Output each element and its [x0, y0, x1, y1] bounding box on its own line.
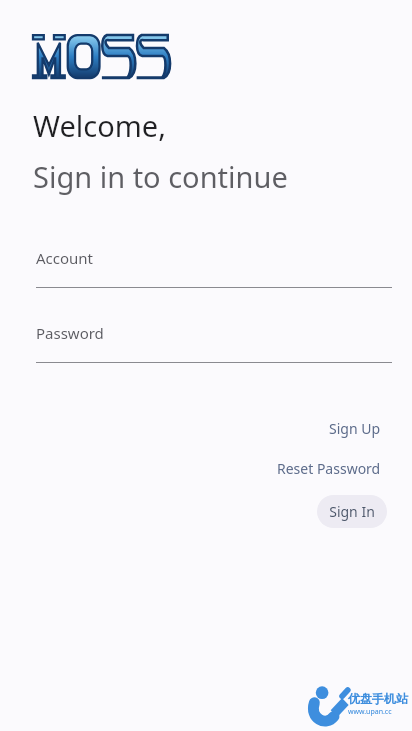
button[interactable]: Password	[36, 323, 392, 363]
button[interactable]: Sign Up	[327, 416, 383, 441]
staticText: Reset Password	[277, 459, 381, 478]
button[interactable]: Account	[36, 248, 392, 288]
staticText: Sign Up	[329, 419, 381, 438]
staticText: Welcome,	[33, 106, 166, 145]
staticText: www.upan.cc	[348, 707, 392, 717]
staticText: Sign In	[329, 502, 375, 521]
button[interactable]: Sign In	[317, 495, 387, 528]
staticText: Password	[36, 323, 104, 343]
staticText: Account	[36, 248, 94, 268]
staticText: Sign in to continue	[33, 157, 288, 196]
button[interactable]: Reset Password	[275, 456, 383, 481]
staticText: 优盘手机站	[348, 691, 408, 706]
